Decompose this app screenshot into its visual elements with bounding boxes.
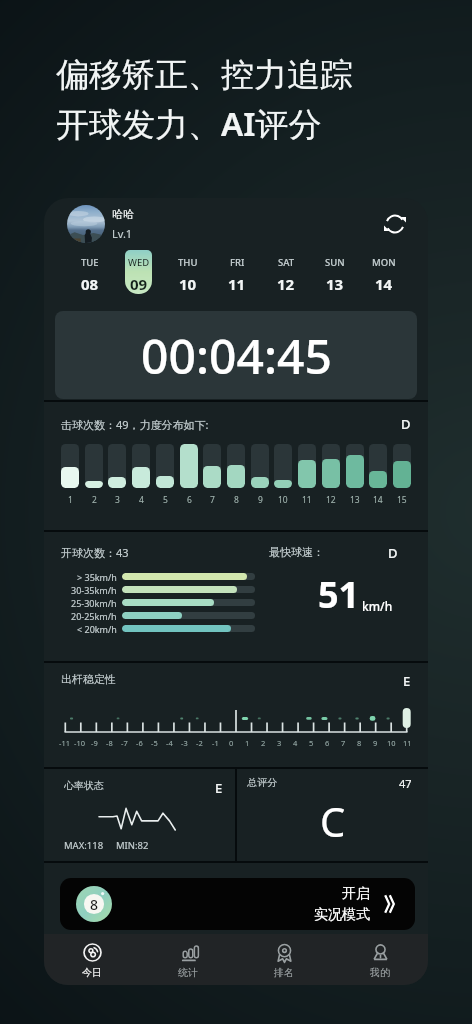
staticText: -7 <box>121 738 128 748</box>
staticText: 击球次数：49，力度分布如下: <box>61 417 209 432</box>
staticText: 14 <box>375 274 393 294</box>
staticText: 4 <box>139 494 144 506</box>
staticText: 统计 <box>178 966 198 979</box>
staticText: 10 <box>278 494 288 506</box>
staticText: -8 <box>106 738 113 748</box>
staticText: -1 <box>212 738 219 748</box>
staticText: 13 <box>326 274 344 294</box>
staticText: TUE <box>81 256 99 269</box>
staticText: -11 <box>59 738 70 748</box>
staticText: 5 <box>163 494 168 506</box>
button[interactable]: 今日 <box>44 934 140 985</box>
staticText: 8 <box>234 494 239 506</box>
staticText: 我的 <box>370 966 390 979</box>
staticText: 出杆稳定性 <box>61 672 116 686</box>
staticText: THU <box>178 256 198 269</box>
staticText: 3 <box>115 494 120 506</box>
staticText: 8 <box>357 738 362 748</box>
staticText: 08 <box>81 274 99 294</box>
button[interactable]: 我的 <box>332 934 428 985</box>
staticText: -5 <box>151 738 158 748</box>
staticText: 5 <box>309 738 314 748</box>
staticText: E <box>403 672 411 690</box>
staticText: MIN:82 <box>116 839 149 852</box>
button[interactable]: SUN <box>321 250 348 294</box>
staticText: 30-35km/h <box>71 584 117 596</box>
button[interactable]: 统计 <box>140 934 236 985</box>
staticText: 3 <box>277 738 282 748</box>
staticText: MON <box>372 256 396 269</box>
staticText: 11 <box>302 494 312 506</box>
staticText: 4 <box>293 738 298 748</box>
staticText: SUN <box>325 256 345 269</box>
staticText: WED <box>128 256 150 269</box>
button[interactable]: TUE <box>76 250 103 294</box>
button[interactable]: Refresh <box>382 211 408 237</box>
staticText: 开球发力、AI评分 <box>56 101 322 146</box>
staticText: 47 <box>399 776 412 791</box>
staticText: 15 <box>397 494 407 506</box>
staticText: -10 <box>74 738 85 748</box>
staticText: 12 <box>326 494 336 506</box>
button[interactable]: Profile photo <box>67 205 105 243</box>
staticText: 7 <box>341 738 346 748</box>
staticText: > 35km/h <box>77 571 117 583</box>
staticText: 9 <box>258 494 263 506</box>
staticText: 总评分 <box>247 776 277 789</box>
staticText: 10 <box>179 274 197 294</box>
staticText: 7 <box>210 494 215 506</box>
staticText: 2 <box>261 738 266 748</box>
button[interactable]: WED <box>125 250 152 294</box>
staticText: -3 <box>181 738 188 748</box>
staticText: 今日 <box>82 966 102 979</box>
staticText: 11 <box>228 274 246 294</box>
staticText: -9 <box>91 738 98 748</box>
staticText: 1 <box>245 738 250 748</box>
staticText: 偏移矫正、控力追踪 <box>56 54 353 96</box>
staticText: 25-30km/h <box>71 597 117 609</box>
button[interactable]: FRI <box>223 250 250 294</box>
staticText: -2 <box>196 738 203 748</box>
staticText: km/h <box>362 598 393 614</box>
staticText: -4 <box>166 738 173 748</box>
staticText: D <box>388 544 398 562</box>
staticText: 排名 <box>274 966 294 979</box>
staticText: 哈哈 <box>112 207 134 221</box>
staticText: 51 <box>318 570 360 619</box>
staticText: FRI <box>230 256 245 269</box>
staticText: 9 <box>373 738 378 748</box>
staticText: 11 <box>403 738 412 748</box>
button[interactable]: 8 <box>60 878 415 930</box>
staticText: < 20km/h <box>77 623 117 635</box>
staticText: 实况模式 <box>314 906 370 924</box>
staticText: 8 <box>90 895 99 914</box>
button[interactable]: THU <box>174 250 201 294</box>
button[interactable]: SAT <box>272 250 299 294</box>
staticText: -6 <box>136 738 143 748</box>
staticText: SAT <box>278 256 295 269</box>
button[interactable]: MON <box>370 250 397 294</box>
button[interactable]: 排名 <box>236 934 332 985</box>
staticText: 开球次数：43 <box>61 545 129 560</box>
staticText: 开启 <box>342 885 370 903</box>
staticText: 09 <box>130 274 148 294</box>
staticText: 00:04:45 <box>141 323 332 388</box>
staticText: E <box>215 779 223 797</box>
staticText: MAX:118 <box>64 839 104 852</box>
staticText: 6 <box>187 494 192 506</box>
staticText: 20-25km/h <box>71 610 117 622</box>
staticText: 10 <box>387 738 396 748</box>
staticText: C <box>320 794 346 848</box>
staticText: 最快球速： <box>269 545 324 559</box>
staticText: 0 <box>229 738 234 748</box>
staticText: 13 <box>350 494 360 506</box>
staticText: 12 <box>277 274 295 294</box>
staticText: 6 <box>325 738 330 748</box>
staticText: 14 <box>373 494 383 506</box>
staticText: 1 <box>68 494 73 506</box>
staticText: D <box>401 415 411 433</box>
staticText: Lv.1 <box>112 226 133 241</box>
staticText: 2 <box>92 494 97 506</box>
staticText: 心率状态 <box>64 779 104 792</box>
